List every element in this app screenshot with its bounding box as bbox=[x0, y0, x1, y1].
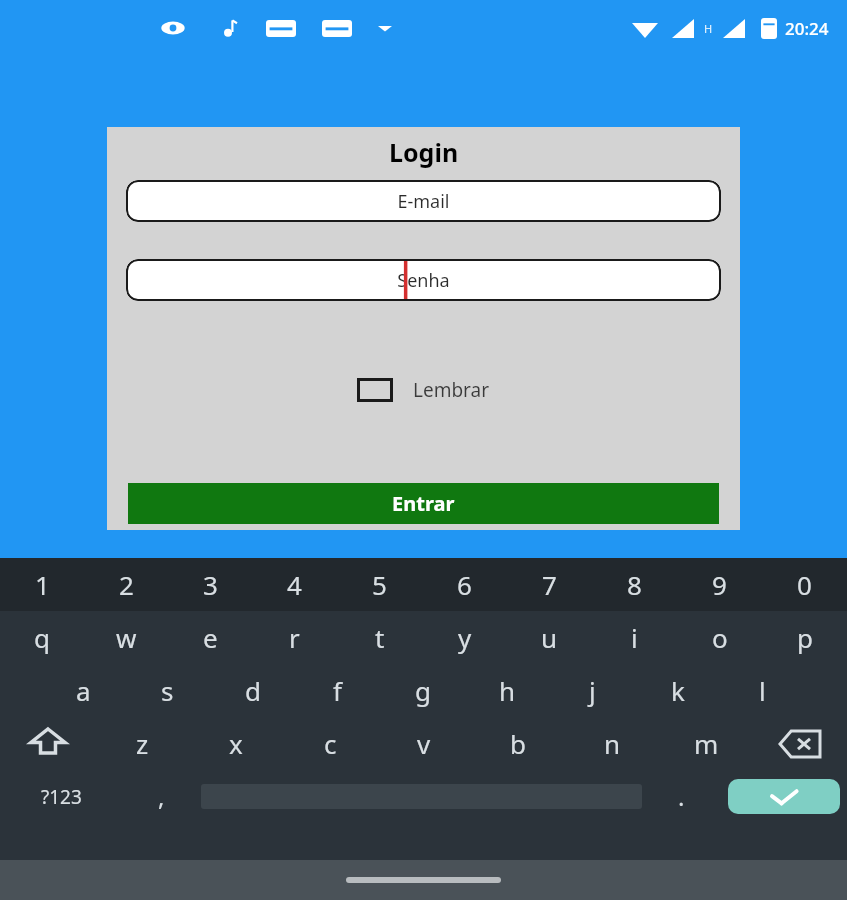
button[interactable]: 8 bbox=[592, 558, 677, 611]
staticText: a bbox=[76, 673, 91, 708]
button[interactable]: 7 bbox=[507, 558, 592, 611]
staticText: , bbox=[158, 780, 165, 813]
button[interactable]: i bbox=[592, 611, 677, 664]
staticText: 2 bbox=[119, 567, 134, 602]
button[interactable]: m bbox=[659, 717, 753, 770]
staticText: 9 bbox=[712, 567, 727, 602]
button[interactable]: x bbox=[189, 717, 283, 770]
staticText: k bbox=[671, 673, 685, 708]
button[interactable]: f bbox=[295, 664, 380, 717]
button[interactable]: t bbox=[337, 611, 422, 664]
staticText: m bbox=[694, 726, 719, 761]
button[interactable]: h bbox=[465, 664, 550, 717]
staticText: h bbox=[499, 673, 516, 708]
button[interactable]: , bbox=[122, 770, 201, 823]
staticText: 1 bbox=[35, 567, 50, 602]
staticText: z bbox=[136, 726, 149, 761]
staticText: e bbox=[203, 620, 218, 655]
button[interactable]: k bbox=[635, 664, 720, 717]
staticText: l bbox=[759, 673, 766, 708]
staticText: r bbox=[289, 620, 300, 655]
staticText: 8 bbox=[627, 567, 642, 602]
button[interactable]: Enter bbox=[728, 779, 840, 814]
button[interactable]: z bbox=[95, 717, 189, 770]
button[interactable]: 9 bbox=[677, 558, 762, 611]
staticText: 3 bbox=[203, 567, 218, 602]
staticText: s bbox=[161, 673, 174, 708]
staticText: o bbox=[712, 620, 728, 655]
button[interactable]: 1 bbox=[0, 558, 84, 611]
staticText: q bbox=[34, 620, 50, 655]
staticText: b bbox=[510, 726, 526, 761]
staticText: ?123 bbox=[41, 784, 82, 810]
button[interactable]: n bbox=[565, 717, 659, 770]
button[interactable]: d bbox=[210, 664, 295, 717]
button[interactable]: l bbox=[720, 664, 805, 717]
button[interactable]: v bbox=[377, 717, 471, 770]
staticText: E-mail bbox=[397, 189, 450, 214]
staticText: n bbox=[604, 726, 621, 761]
staticText: 0 bbox=[797, 567, 812, 602]
staticText: 4 bbox=[287, 567, 302, 602]
button[interactable]: 2 bbox=[84, 558, 168, 611]
staticText: 20:24 bbox=[785, 17, 829, 40]
button[interactable]: b bbox=[471, 717, 565, 770]
staticText: f bbox=[333, 673, 342, 708]
button[interactable]: w bbox=[84, 611, 168, 664]
staticText: Lembrar bbox=[413, 377, 490, 403]
button[interactable]: 6 bbox=[422, 558, 507, 611]
staticText: Senha bbox=[397, 268, 450, 293]
staticText: . bbox=[678, 780, 685, 813]
button[interactable]: y bbox=[422, 611, 507, 664]
staticText: x bbox=[229, 726, 243, 761]
staticText: 5 bbox=[372, 567, 387, 602]
staticText: 7 bbox=[542, 567, 557, 602]
button[interactable]: Senha bbox=[126, 259, 721, 301]
button[interactable]: o bbox=[677, 611, 762, 664]
button[interactable]: q bbox=[0, 611, 84, 664]
staticText: w bbox=[116, 620, 137, 655]
staticText: Login bbox=[389, 135, 459, 169]
button[interactable]: Backspace bbox=[753, 717, 847, 770]
button[interactable]: Shift bbox=[0, 717, 95, 770]
button[interactable]: u bbox=[507, 611, 592, 664]
staticText: p bbox=[797, 620, 813, 655]
button[interactable]: 4 bbox=[252, 558, 337, 611]
staticText: y bbox=[458, 620, 472, 655]
staticText: d bbox=[245, 673, 261, 708]
button[interactable]: p bbox=[762, 611, 847, 664]
button[interactable]: Lembrar bbox=[357, 377, 490, 403]
staticText: Entrar bbox=[392, 490, 455, 517]
button[interactable]: e bbox=[168, 611, 252, 664]
button[interactable]: a bbox=[41, 664, 125, 717]
staticText: t bbox=[375, 620, 385, 655]
staticText: i bbox=[631, 620, 638, 655]
staticText: u bbox=[541, 620, 558, 655]
staticText: g bbox=[415, 673, 431, 708]
button[interactable]: . bbox=[642, 770, 721, 823]
button[interactable]: j bbox=[550, 664, 635, 717]
button[interactable]: 0 bbox=[762, 558, 847, 611]
button[interactable]: ?123 bbox=[0, 770, 122, 823]
button[interactable]: g bbox=[380, 664, 465, 717]
button[interactable]: s bbox=[125, 664, 210, 717]
staticText: 6 bbox=[457, 567, 472, 602]
staticText: H bbox=[704, 21, 713, 36]
button[interactable]: 5 bbox=[337, 558, 422, 611]
button[interactable]: 3 bbox=[168, 558, 252, 611]
staticText: v bbox=[417, 726, 431, 761]
button[interactable]: E-mail bbox=[126, 180, 721, 222]
button[interactable]: Entrar bbox=[128, 483, 719, 524]
button[interactable]: c bbox=[283, 717, 377, 770]
staticText: c bbox=[324, 726, 337, 761]
button[interactable]: r bbox=[252, 611, 337, 664]
staticText: j bbox=[589, 673, 596, 708]
